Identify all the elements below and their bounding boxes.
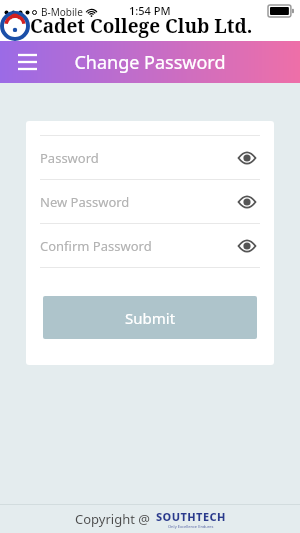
- staticText: New Password: [40, 193, 234, 211]
- staticText: Change Password: [74, 50, 226, 75]
- button[interactable]: Submit: [43, 296, 257, 339]
- staticText: Only Excellence Endures: [168, 524, 214, 529]
- button[interactable]: Show New Password: [234, 189, 260, 215]
- button[interactable]: Show Password: [234, 145, 260, 171]
- button[interactable]: Show Confirm Password: [234, 233, 260, 259]
- staticText: Copyright @: [75, 510, 150, 528]
- staticText: Cadet College Club Ltd.: [30, 13, 253, 39]
- staticText: Confirm Password: [40, 237, 234, 255]
- button[interactable]: New Password: [26, 180, 274, 223]
- staticText: SOUTHTECH: [156, 509, 226, 524]
- staticText: Submit: [125, 308, 176, 328]
- staticText: B-Mobile: [41, 5, 83, 19]
- button[interactable]: Password: [26, 136, 274, 179]
- staticText: Password: [40, 149, 234, 167]
- button[interactable]: Confirm Password: [26, 224, 274, 267]
- staticText: 1:54 PM: [129, 3, 171, 18]
- button[interactable]: Open navigation menu: [10, 45, 44, 79]
